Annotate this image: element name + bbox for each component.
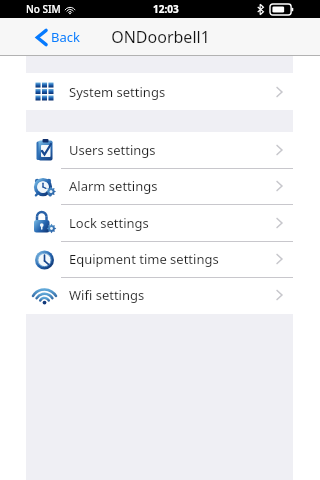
staticText: Lock settings [69,214,149,232]
staticText: 12:03 [153,2,179,16]
staticText: No SIM [26,2,61,16]
staticText: Wifi settings [69,286,145,304]
staticText: System settings [69,83,166,101]
button[interactable]: Equipment time settings [26,241,293,277]
button[interactable]: Alarm settings [26,168,293,204]
button[interactable]: Back [32,22,84,52]
button[interactable]: System settings [26,73,293,110]
button[interactable]: Lock settings [26,204,293,241]
staticText: Equipment time settings [69,250,219,268]
staticText: ONDoorbell1 [111,26,210,48]
staticText: Alarm settings [69,177,158,195]
staticText: Back [51,28,80,46]
staticText: Users settings [69,141,156,159]
button[interactable]: Users settings [26,132,293,168]
button[interactable]: Wifi settings [26,277,293,313]
